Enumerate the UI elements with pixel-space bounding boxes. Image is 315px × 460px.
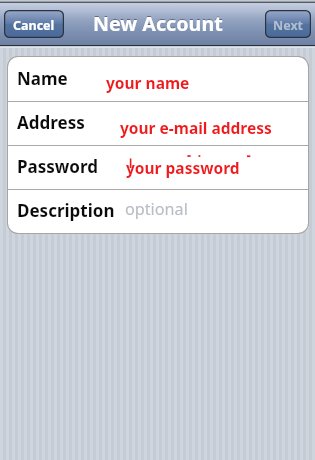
button[interactable]: Password	[8, 145, 308, 189]
staticText: New Account	[93, 9, 223, 36]
staticText: Description	[17, 199, 115, 222]
staticText: optional	[125, 198, 188, 220]
button[interactable]: Address	[8, 101, 308, 145]
staticText: Password	[17, 155, 98, 178]
button[interactable]: Next	[265, 10, 311, 38]
button[interactable]: Name	[8, 57, 308, 101]
staticText: New Account	[93, 10, 223, 37]
staticText: your e-mail address	[120, 117, 272, 138]
staticText: Next	[273, 17, 304, 34]
button[interactable]: Cancel	[4, 10, 64, 38]
staticText: your password	[126, 157, 240, 178]
staticText: your name	[106, 72, 190, 93]
button[interactable]: Description	[8, 189, 308, 233]
staticText: Cancel	[13, 17, 55, 34]
staticText: Address	[17, 111, 85, 134]
staticText: Name	[17, 67, 68, 90]
